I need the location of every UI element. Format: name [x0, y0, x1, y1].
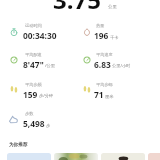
staticText: 3.75: [53, 0, 101, 16]
other: Stride: [83, 85, 91, 93]
staticText: 公里/小时: [112, 63, 131, 69]
staticText: 平均配速: [25, 52, 42, 57]
staticText: 196: [94, 30, 109, 41]
staticText: 千卡: [110, 35, 119, 40]
button[interactable]: [101, 153, 145, 160]
button[interactable]: [148, 153, 160, 160]
staticText: 5,498: [23, 118, 45, 129]
staticText: 步数: [25, 111, 34, 116]
staticText: 00:34:30: [23, 30, 57, 41]
staticText: 步/分钟: [39, 93, 54, 99]
button[interactable]: [54, 153, 98, 160]
staticText: 159: [23, 89, 38, 100]
other: Average speed: [83, 56, 91, 64]
staticText: 71: [94, 89, 104, 100]
staticText: 平均步幅: [96, 82, 113, 87]
staticText: 8'47": [23, 59, 44, 70]
other: Calories: [83, 28, 91, 36]
staticText: 厘米: [105, 94, 114, 99]
other: Cadence: [10, 85, 18, 93]
staticText: 公里: [108, 4, 117, 10]
other: Steps: [9, 115, 18, 124]
staticText: 为你推荐: [9, 142, 28, 148]
staticText: 6.83: [94, 59, 111, 70]
staticText: /公里: [45, 63, 55, 69]
other: Duration: [10, 28, 18, 36]
staticText: 运动时间: [25, 23, 42, 28]
staticText: 热量: [96, 23, 105, 28]
staticText: 步: [46, 123, 51, 128]
staticText: 平均速度: [96, 52, 113, 57]
staticText: 平均步频: [25, 82, 42, 87]
other: Average pace: [10, 56, 18, 64]
